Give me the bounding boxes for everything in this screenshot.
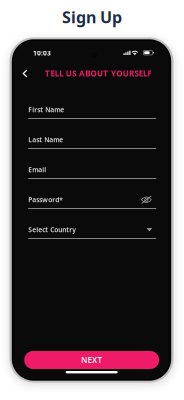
staticText: Password* bbox=[28, 195, 63, 204]
staticText: Select Country bbox=[28, 225, 76, 234]
staticText: Email bbox=[28, 165, 46, 174]
staticText: Sign Up bbox=[62, 6, 122, 28]
button[interactable]: Last Name bbox=[28, 133, 156, 149]
button[interactable]: Password* bbox=[28, 193, 156, 209]
button[interactable]: Email bbox=[28, 163, 156, 179]
staticText: First Name bbox=[28, 105, 64, 114]
staticText: NEXT bbox=[81, 355, 102, 365]
button[interactable]: NEXT bbox=[24, 351, 159, 369]
button[interactable]: First Name bbox=[28, 103, 156, 119]
staticText: TELL US ABOUT YOURSELF bbox=[45, 68, 151, 79]
button[interactable]: Select Country bbox=[28, 223, 156, 239]
staticText: Last Name bbox=[28, 135, 63, 144]
button[interactable]: Back bbox=[18, 66, 32, 80]
staticText: 10:03 bbox=[33, 48, 51, 57]
